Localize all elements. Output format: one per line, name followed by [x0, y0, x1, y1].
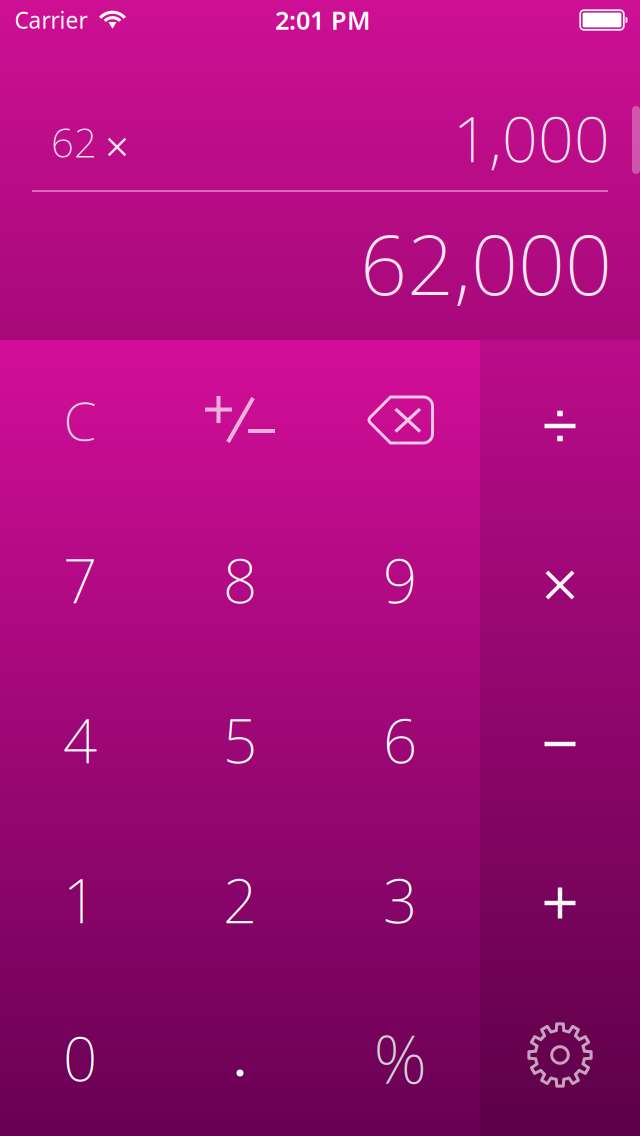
staticText: 2 — [223, 860, 257, 940]
staticText: 0 — [63, 1018, 97, 1098]
staticText: 2:01 PM — [275, 3, 371, 37]
button[interactable]: Add — [480, 823, 640, 983]
button[interactable]: Decimal point — [160, 993, 320, 1136]
button[interactable]: Clear — [0, 340, 160, 500]
staticText: 1 — [63, 860, 97, 940]
staticText: 4 — [63, 700, 97, 780]
button[interactable]: 1 — [0, 820, 160, 980]
button[interactable]: 2 — [160, 820, 320, 980]
staticText: 6 — [383, 700, 417, 780]
button[interactable]: Subtract — [480, 664, 640, 824]
staticText: % — [373, 1014, 426, 1102]
button[interactable]: 4 — [0, 660, 160, 820]
button[interactable]: 7 — [0, 500, 160, 660]
button[interactable]: Percent — [320, 978, 480, 1136]
button[interactable]: 9 — [320, 500, 480, 660]
staticText: 9 — [383, 540, 417, 620]
staticText: C — [63, 385, 96, 455]
button[interactable]: Settings — [480, 975, 640, 1135]
button[interactable]: 0 — [0, 978, 160, 1136]
staticText: 62,000 — [360, 208, 612, 318]
staticText: 3 — [383, 860, 417, 940]
staticText: 5 — [223, 700, 257, 780]
staticText: 7 — [63, 540, 97, 620]
button[interactable]: 5 — [160, 660, 320, 820]
staticText: 8 — [223, 540, 257, 620]
staticText: Carrier — [14, 5, 87, 35]
button[interactable]: 8 — [160, 500, 320, 660]
button[interactable]: Delete — [320, 340, 480, 500]
button[interactable]: 6 — [320, 660, 480, 820]
button[interactable]: Divide — [480, 346, 640, 506]
staticText: 62 — [51, 115, 97, 168]
button[interactable]: Plus minus — [160, 340, 320, 500]
button[interactable]: 3 — [320, 820, 480, 980]
button[interactable]: Multiply — [480, 505, 640, 665]
staticText: 1,000 — [453, 96, 610, 180]
